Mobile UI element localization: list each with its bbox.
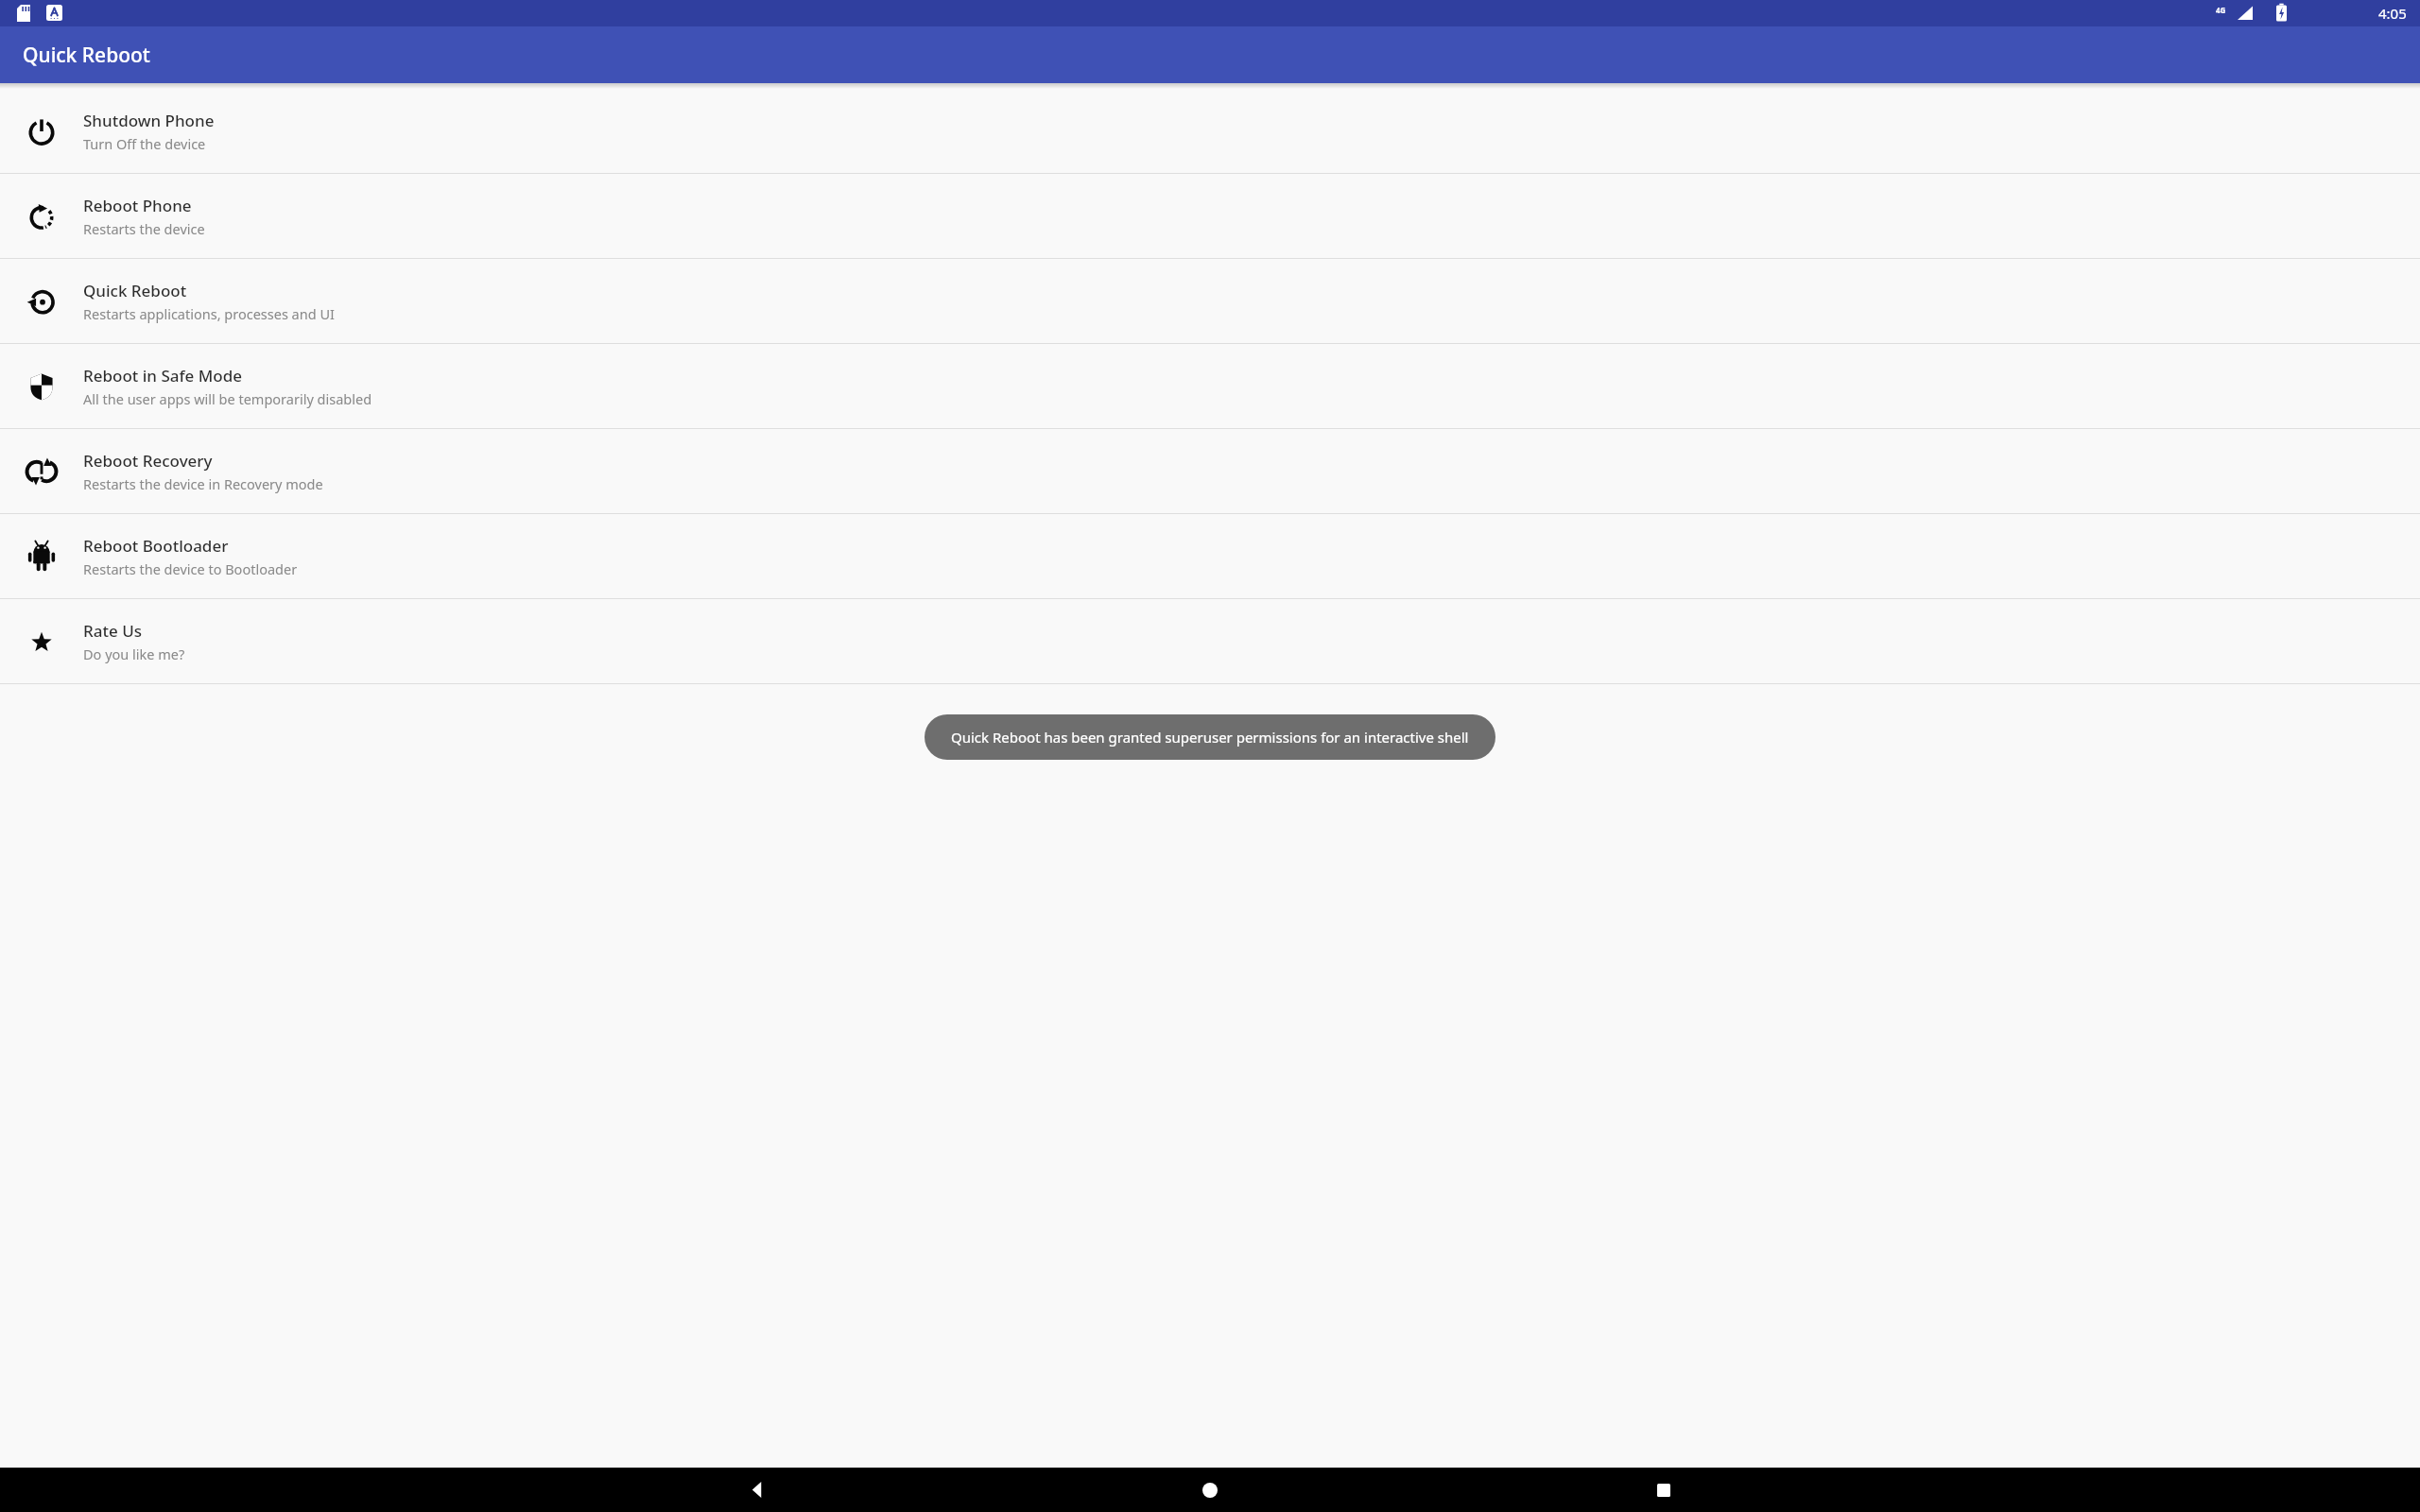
staticText: All the user apps will be temporarily di… [83, 389, 372, 408]
staticText: Turn Off the device [83, 134, 206, 153]
button[interactable]: Recent apps [1637, 1468, 1690, 1512]
staticText: Quick Reboot [23, 42, 150, 69]
staticText: Reboot Bootloader [83, 535, 229, 557]
button[interactable]: Quick Reboot [0, 259, 2420, 343]
staticText: Reboot in Safe Mode [83, 365, 243, 387]
button[interactable]: Reboot Recovery [0, 429, 2420, 513]
staticText: Rate Us [83, 620, 142, 642]
button[interactable]: Rate Us [0, 599, 2420, 683]
staticText: Restarts applications, processes and UI [83, 304, 335, 323]
staticText: Shutdown Phone [83, 110, 215, 131]
button[interactable]: Shutdown Phone [0, 89, 2420, 173]
button[interactable]: Reboot Bootloader [0, 514, 2420, 598]
staticText: Quick Reboot has been granted superuser … [951, 728, 1469, 747]
staticText: 4:05 [2378, 4, 2407, 23]
staticText: Do you like me? [83, 644, 185, 663]
staticText: Quick Reboot [83, 280, 187, 301]
staticText: Restarts the device to Bootloader [83, 559, 298, 578]
button[interactable]: Home [1184, 1468, 1236, 1512]
staticText: Reboot Recovery [83, 450, 213, 472]
staticText: Restarts the device [83, 219, 205, 238]
button[interactable]: Reboot Phone [0, 174, 2420, 258]
button[interactable]: Back [730, 1468, 783, 1512]
staticText: 4G [2216, 5, 2226, 15]
staticText: Reboot Phone [83, 195, 192, 216]
button[interactable]: Quick Reboot has been granted superuser … [951, 728, 1469, 747]
button[interactable]: Reboot in Safe Mode [0, 344, 2420, 428]
staticText: Restarts the device in Recovery mode [83, 474, 323, 493]
